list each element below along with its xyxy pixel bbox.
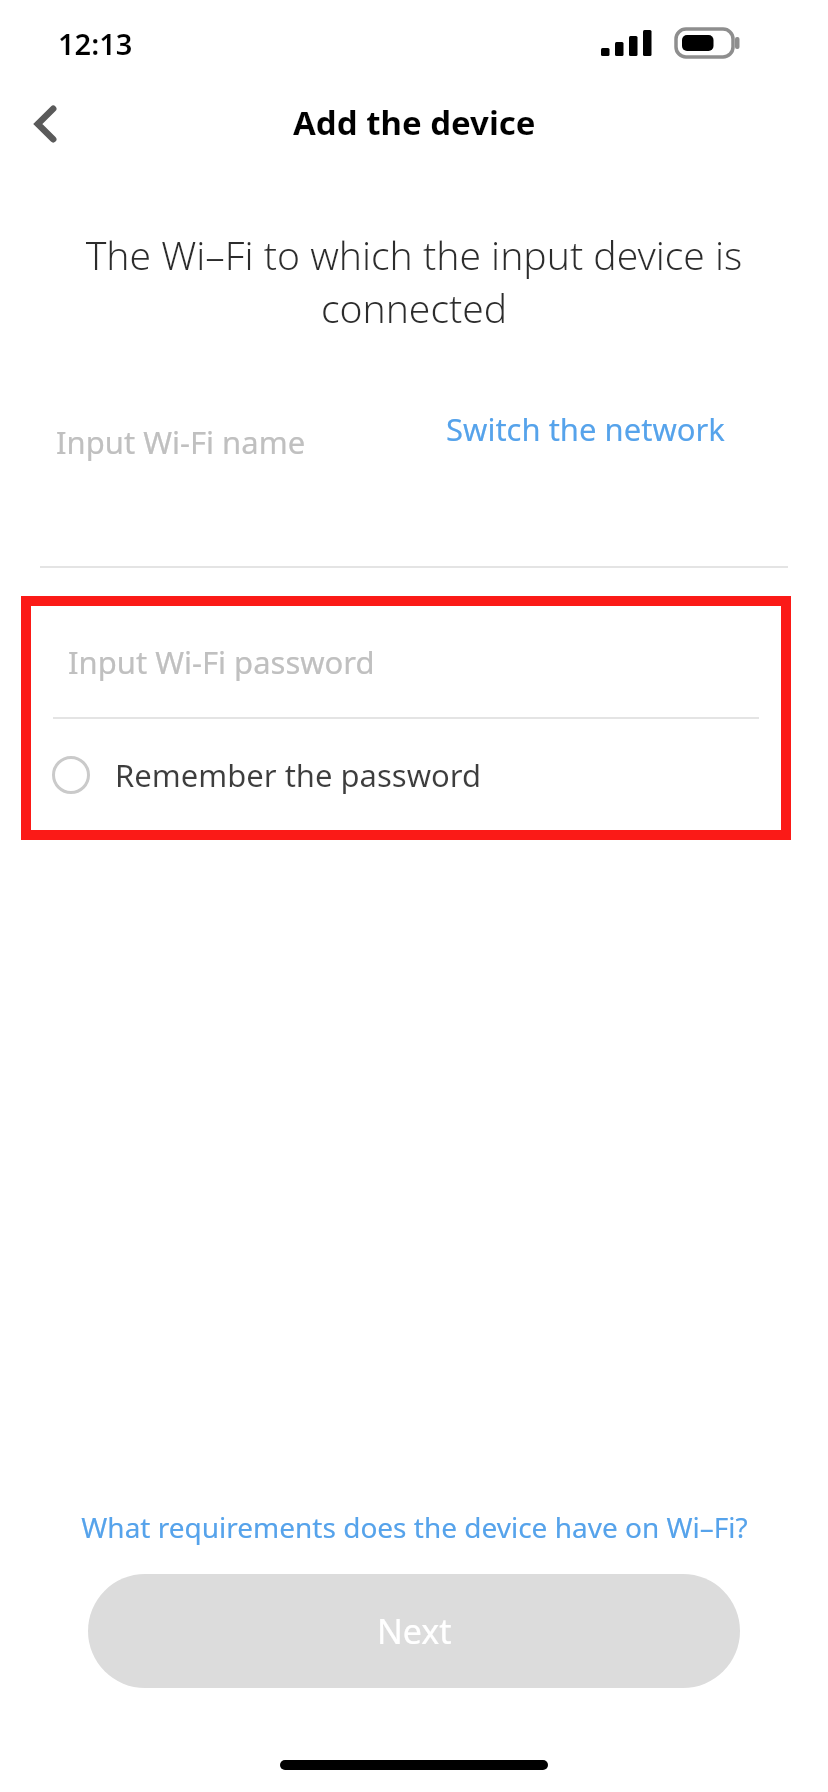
button[interactable]: Input Wi-Fi password bbox=[31, 606, 781, 717]
button[interactable]: What requirements does the device have o… bbox=[67, 1498, 762, 1556]
staticText: Input Wi-Fi password bbox=[68, 641, 375, 683]
staticText: The Wi–Fi to which the input device is c… bbox=[78, 228, 750, 335]
staticText: Next bbox=[377, 1608, 452, 1654]
button[interactable]: Input Wi-Fi name bbox=[0, 396, 828, 488]
staticText: Remember the password bbox=[115, 754, 482, 796]
staticText: Switch the network bbox=[446, 408, 725, 450]
staticText: Add the device bbox=[293, 100, 536, 145]
button[interactable]: Switch the network bbox=[436, 390, 735, 468]
staticText: Input Wi-Fi name bbox=[56, 421, 306, 463]
staticText: What requirements does the device have o… bbox=[81, 1508, 748, 1546]
button[interactable]: Back bbox=[12, 90, 80, 158]
staticText: 12:13 bbox=[58, 24, 133, 63]
button[interactable]: Next bbox=[88, 1574, 740, 1688]
button[interactable]: Remember the password bbox=[31, 719, 781, 830]
